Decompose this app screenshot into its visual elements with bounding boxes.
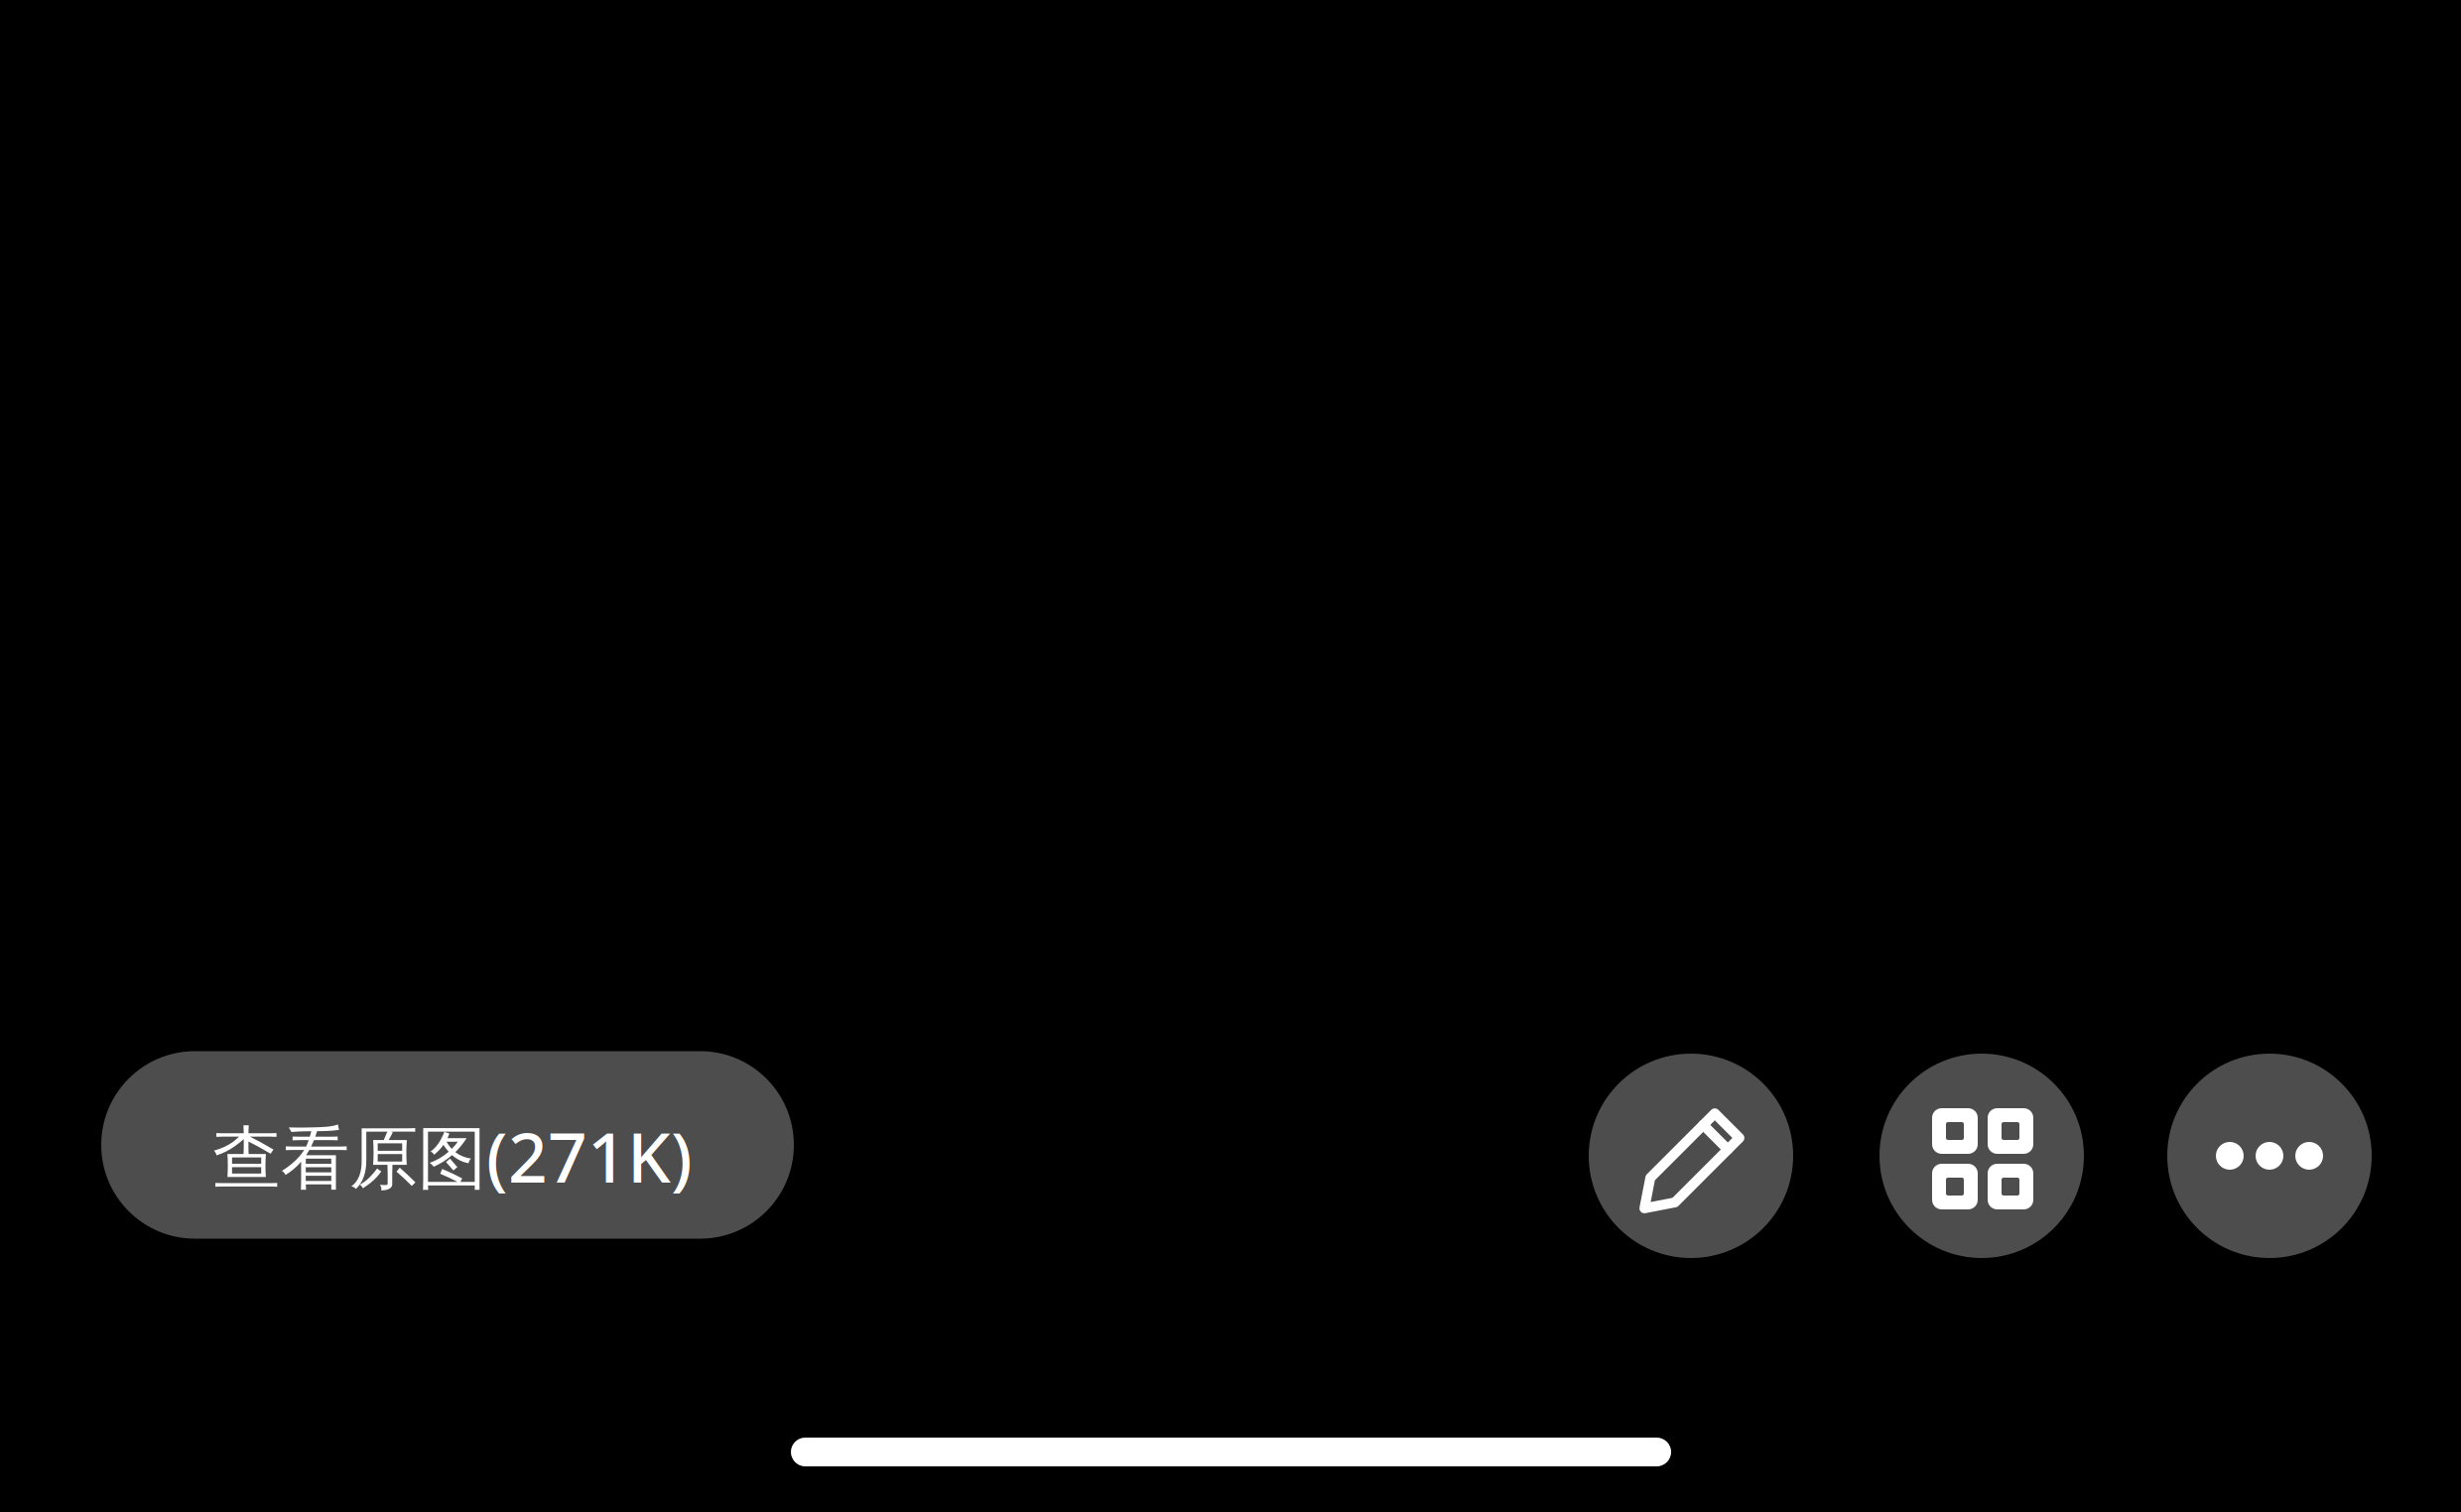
button[interactable]: More [2167, 1054, 2372, 1258]
button[interactable]: Edit [1589, 1054, 1793, 1258]
button[interactable]: Thumbnails [1879, 1054, 2084, 1258]
staticText: 查看原图(271K) [212, 1110, 693, 1202]
button[interactable]: 查看原图(271K) [101, 1051, 794, 1239]
